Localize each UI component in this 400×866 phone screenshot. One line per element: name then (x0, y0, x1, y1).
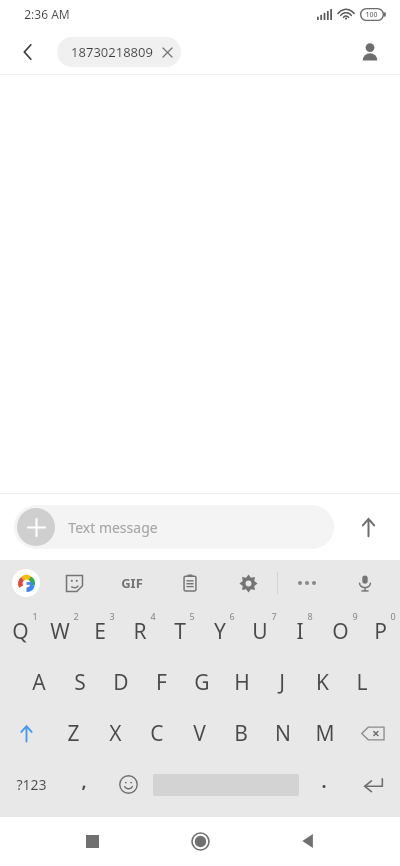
button[interactable]: E (80, 606, 120, 657)
button[interactable]: F (141, 657, 182, 708)
button[interactable]: Attach (14, 505, 334, 549)
button[interactable]: Home (178, 819, 222, 863)
staticText: 8 (307, 610, 313, 622)
button[interactable]: J (262, 657, 302, 708)
staticText: 0 (390, 610, 396, 622)
button[interactable]: Google (6, 563, 46, 603)
button[interactable]: Recents (70, 819, 114, 863)
button[interactable]: Back (286, 819, 330, 863)
button[interactable]: V (178, 708, 220, 759)
button[interactable]: P (360, 606, 400, 657)
button[interactable]: 18730218809 (57, 37, 181, 67)
button[interactable]: Z (53, 708, 94, 759)
button[interactable]: , (62, 759, 106, 810)
staticText: F (156, 668, 167, 697)
button[interactable]: Y (200, 606, 240, 657)
button[interactable]: Q (0, 606, 40, 657)
button[interactable]: N (262, 708, 304, 759)
staticText: H (234, 668, 250, 697)
button[interactable]: Send (346, 505, 390, 549)
button[interactable]: Attach (17, 508, 55, 546)
staticText: . (321, 769, 327, 794)
button[interactable]: C (136, 708, 178, 759)
button[interactable]: H (222, 657, 262, 708)
staticText: R (133, 617, 147, 646)
staticText: J (279, 668, 285, 697)
button[interactable]: GIF (103, 560, 161, 606)
staticText: T (174, 617, 186, 646)
button[interactable]: D (100, 657, 141, 708)
button[interactable]: Clipboard (161, 560, 219, 606)
button[interactable]: Space (150, 759, 302, 810)
staticText: 1 (32, 610, 38, 622)
staticText: C (150, 719, 164, 748)
staticText: U (252, 617, 268, 646)
button[interactable]: R (120, 606, 160, 657)
staticText: L (356, 668, 368, 697)
staticText: K (316, 668, 329, 697)
staticText: S (74, 668, 86, 697)
button[interactable]: M (304, 708, 346, 759)
staticText: Text message (68, 518, 158, 537)
button[interactable]: Enter (346, 759, 400, 810)
button[interactable]: . (302, 759, 346, 810)
staticText: W (50, 617, 70, 646)
button[interactable]: More (278, 560, 336, 606)
button[interactable]: G (182, 657, 222, 708)
staticText: G (194, 668, 210, 697)
staticText: O (332, 617, 349, 646)
staticText: 100 (365, 10, 378, 20)
staticText: 5 (189, 610, 195, 622)
button[interactable]: O (320, 606, 360, 657)
staticText: 6 (229, 610, 235, 622)
button[interactable]: K (302, 657, 342, 708)
staticText: B (234, 719, 248, 748)
staticText: 18730218809 (71, 43, 153, 61)
button[interactable]: Stickers (46, 560, 103, 606)
staticText: E (94, 617, 106, 646)
staticText: 4 (150, 610, 156, 622)
staticText: Z (67, 719, 80, 748)
staticText: 2:36 AM (24, 6, 70, 22)
button[interactable]: Contact (350, 32, 390, 72)
button[interactable]: Back (8, 32, 48, 72)
staticText: ?123 (16, 775, 47, 794)
button[interactable]: A (18, 657, 59, 708)
staticText: V (193, 719, 206, 748)
staticText: , (81, 769, 87, 794)
staticText: 3 (109, 610, 115, 622)
staticText: 9 (352, 610, 358, 622)
button[interactable]: Voice input (336, 560, 394, 606)
staticText: Q (12, 617, 29, 646)
button[interactable]: T (160, 606, 200, 657)
staticText: I (296, 617, 304, 646)
staticText: A (32, 668, 46, 697)
button[interactable]: X (94, 708, 136, 759)
button[interactable]: S (59, 657, 100, 708)
staticText: D (113, 668, 129, 697)
staticText: GIF (121, 574, 143, 592)
staticText: P (374, 617, 387, 646)
button[interactable]: U (240, 606, 280, 657)
button[interactable]: B (220, 708, 262, 759)
staticText: 7 (271, 610, 277, 622)
staticText: Y (214, 617, 226, 646)
button[interactable]: ?123 (0, 759, 62, 810)
staticText: X (109, 719, 122, 748)
staticText: N (275, 719, 291, 748)
staticText: 2 (73, 610, 79, 622)
button[interactable]: W (40, 606, 80, 657)
button[interactable]: Backspace (346, 708, 400, 759)
button[interactable]: Shift (0, 708, 53, 759)
staticText: M (315, 719, 335, 748)
button[interactable]: L (342, 657, 382, 708)
button[interactable]: Emoji (106, 759, 150, 810)
button[interactable]: Settings (219, 560, 277, 606)
button[interactable]: I (280, 606, 320, 657)
